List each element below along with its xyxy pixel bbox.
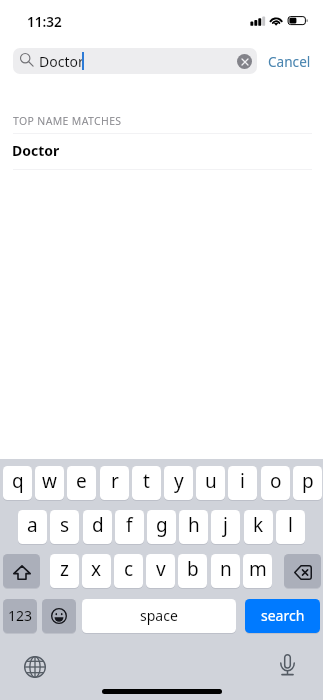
button[interactable]: d xyxy=(83,510,112,544)
button[interactable]: p xyxy=(293,466,322,500)
button[interactable]: Dictation xyxy=(280,654,295,675)
button[interactable]: i xyxy=(228,466,257,500)
button[interactable]: q xyxy=(3,466,32,500)
button[interactable]: Shift xyxy=(3,554,40,588)
button[interactable]: l xyxy=(276,510,305,544)
button[interactable]: r xyxy=(100,466,129,500)
button[interactable]: t xyxy=(132,466,161,500)
staticText: h xyxy=(188,512,200,538)
staticText: s xyxy=(60,512,70,538)
button[interactable]: v xyxy=(146,554,175,588)
button[interactable]: j xyxy=(211,510,240,544)
staticText: b xyxy=(187,556,199,582)
staticText: r xyxy=(111,468,119,494)
staticText: o xyxy=(270,468,282,494)
button[interactable]: k xyxy=(244,510,273,544)
button[interactable]: s xyxy=(50,510,79,544)
staticText: 123 xyxy=(8,606,33,625)
staticText: d xyxy=(92,512,104,538)
staticText: Doctor xyxy=(12,141,60,160)
button[interactable]: Doctor xyxy=(0,134,323,169)
button[interactable]: Cancel xyxy=(263,48,316,74)
staticText: t xyxy=(143,468,150,494)
staticText: Cancel xyxy=(268,52,311,71)
button[interactable]: Change keyboard xyxy=(24,656,46,678)
button[interactable]: m xyxy=(243,554,272,588)
staticText: n xyxy=(220,556,232,582)
button[interactable]: h xyxy=(179,510,208,544)
button[interactable]: space xyxy=(82,599,236,633)
button[interactable]: z xyxy=(50,554,79,588)
staticText: v xyxy=(156,556,166,582)
staticText: l xyxy=(288,512,293,538)
staticText: a xyxy=(27,512,38,538)
button[interactable]: x xyxy=(82,554,111,588)
staticText: z xyxy=(60,556,69,582)
staticText: x xyxy=(91,556,102,582)
button[interactable]: a xyxy=(18,510,47,544)
button[interactable]: Backspace xyxy=(284,554,321,588)
staticText: g xyxy=(156,512,168,538)
staticText: f xyxy=(126,512,133,538)
staticText: search xyxy=(261,606,305,625)
staticText: i xyxy=(240,468,245,494)
staticText: j xyxy=(223,512,228,538)
button[interactable]: n xyxy=(211,554,240,588)
staticText: k xyxy=(253,512,264,538)
button[interactable]: f xyxy=(115,510,144,544)
button[interactable]: Doctor xyxy=(13,48,257,74)
staticText: e xyxy=(76,468,87,494)
button[interactable]: search xyxy=(245,599,320,633)
staticText: Doctor xyxy=(39,52,84,71)
button[interactable]: u xyxy=(196,466,225,500)
button[interactable]: 123 xyxy=(3,599,37,633)
staticText: u xyxy=(205,468,217,494)
staticText: w xyxy=(42,468,57,494)
button[interactable]: c xyxy=(114,554,143,588)
button[interactable]: e xyxy=(67,466,96,500)
staticText: space xyxy=(140,606,178,625)
staticText: c xyxy=(124,556,134,582)
button[interactable]: Emoji xyxy=(42,599,76,633)
button[interactable]: y xyxy=(164,466,193,500)
button[interactable]: o xyxy=(261,466,290,500)
staticText: q xyxy=(12,468,24,494)
staticText: 11:32 xyxy=(27,13,62,31)
staticText: y xyxy=(174,468,184,494)
button[interactable]: b xyxy=(178,554,207,588)
staticText: TOP NAME MATCHES xyxy=(13,114,122,128)
staticText: p xyxy=(302,468,314,494)
button[interactable]: w xyxy=(35,466,64,500)
button[interactable]: g xyxy=(147,510,176,544)
staticText: m xyxy=(249,556,267,582)
button[interactable]: Clear text xyxy=(237,54,252,69)
